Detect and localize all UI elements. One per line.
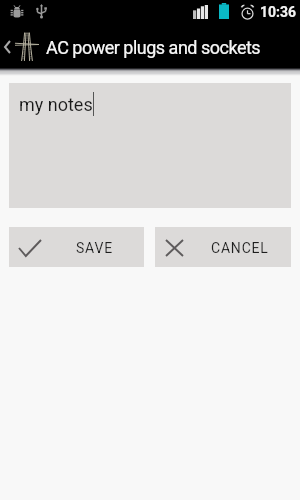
button[interactable]: SAVE <box>9 227 144 267</box>
staticText: 10:36 <box>260 4 297 20</box>
staticText: SAVE <box>76 240 113 256</box>
staticText: my notes <box>19 94 93 115</box>
button[interactable]: CANCEL <box>155 227 291 267</box>
staticText: CANCEL <box>211 240 269 256</box>
button[interactable]: my notes <box>9 83 291 208</box>
staticText: AC power plugs and sockets <box>46 37 261 58</box>
button[interactable]: Navigate up <box>0 24 44 68</box>
